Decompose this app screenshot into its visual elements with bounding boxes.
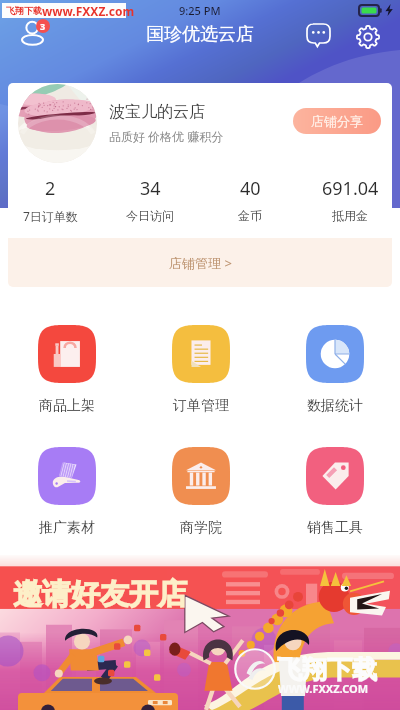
staticText: 7日订单数 bbox=[23, 208, 78, 224]
button[interactable]: 商品上架 bbox=[0, 325, 134, 415]
staticText: 2 bbox=[45, 176, 56, 201]
staticText: 销售工具 bbox=[307, 519, 363, 537]
button[interactable]: Settings bbox=[351, 20, 384, 53]
staticText: 今日访问 bbox=[126, 208, 174, 223]
button[interactable]: 商学院 bbox=[134, 447, 268, 537]
staticText: 40 bbox=[240, 176, 261, 201]
staticText: 店铺管理 > bbox=[169, 254, 232, 272]
button[interactable]: Messages bbox=[302, 19, 335, 52]
button[interactable]: 订单管理 bbox=[134, 325, 268, 415]
staticText: 商品上架 bbox=[39, 397, 95, 415]
button[interactable]: 店铺管理 > bbox=[8, 238, 392, 287]
button[interactable]: 数据统计 bbox=[268, 325, 400, 415]
staticText: 推广素材 bbox=[39, 519, 95, 537]
staticText: 抵用金 bbox=[332, 208, 368, 223]
button[interactable]: 推广素材 bbox=[0, 447, 134, 537]
staticText: WWW.FXXZ.COM bbox=[278, 681, 369, 696]
button[interactable]: 邀请好友开店 bbox=[0, 555, 400, 710]
staticText: 34 bbox=[140, 176, 161, 201]
staticText: 品质好 价格优 赚积分 bbox=[109, 128, 224, 144]
staticText: 9:25 PM bbox=[179, 3, 221, 18]
staticText: 邀请好友开店 bbox=[13, 576, 187, 613]
staticText: 飞翔下载 bbox=[277, 654, 377, 685]
staticText: 691.04 bbox=[322, 176, 379, 201]
staticText: 数据统计 bbox=[307, 397, 363, 415]
staticText: 国珍优选云店 bbox=[146, 23, 254, 46]
staticText: 3 bbox=[40, 20, 46, 32]
staticText: 商学院 bbox=[180, 519, 222, 537]
staticText: 店铺分享 bbox=[311, 113, 363, 129]
button[interactable]: 销售工具 bbox=[268, 447, 400, 537]
staticText: 金币 bbox=[238, 208, 262, 223]
button[interactable]: Profile bbox=[14, 14, 54, 54]
button[interactable]: 店铺分享 bbox=[293, 108, 381, 134]
staticText: www.FXXZ.com bbox=[42, 3, 135, 18]
staticText: 飞翔下载 bbox=[6, 5, 42, 16]
staticText: 波宝儿的云店 bbox=[109, 102, 205, 122]
staticText: 订单管理 bbox=[173, 397, 229, 415]
